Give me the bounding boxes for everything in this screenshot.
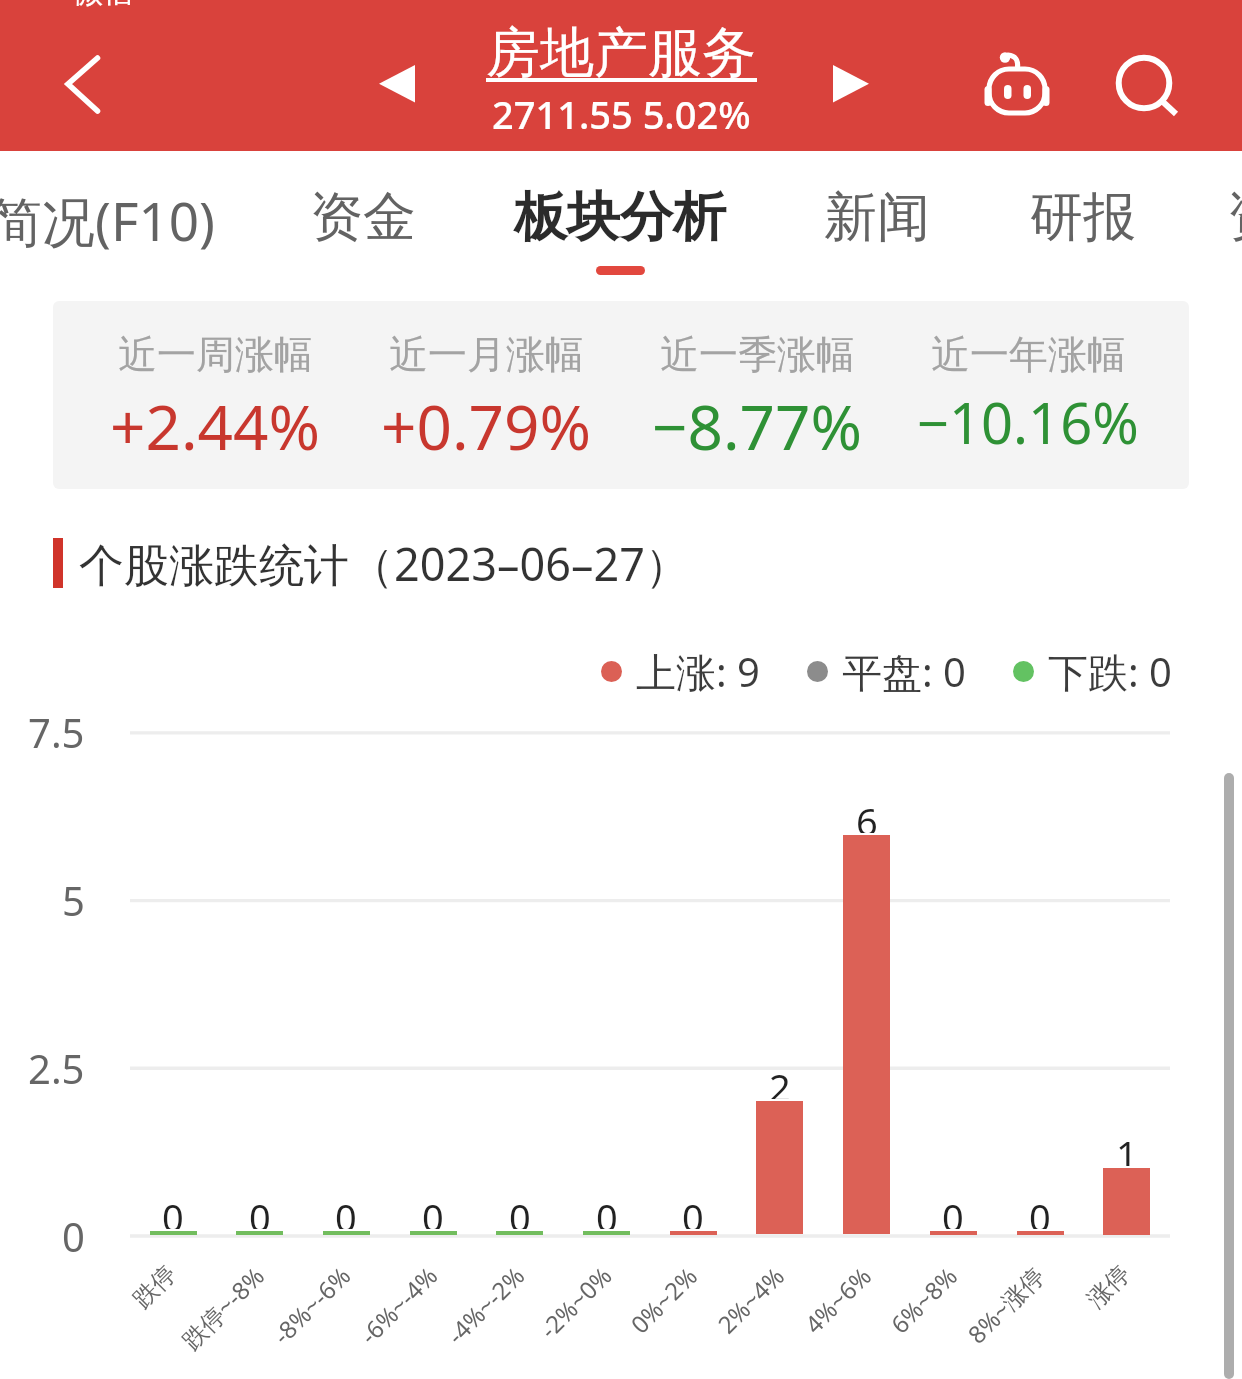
staticText: 板块分析 xyxy=(514,184,726,251)
staticText: 0 xyxy=(249,1191,271,1229)
button[interactable]: 新闻 xyxy=(757,151,997,281)
staticText: 跌停~-8% xyxy=(174,1259,271,1356)
button[interactable]: 板块分析 xyxy=(500,151,740,281)
staticText: +2.44% xyxy=(110,384,320,468)
staticText: 0 xyxy=(422,1191,444,1229)
button[interactable]: AI assistant xyxy=(961,35,1061,135)
staticText: 8%~涨停 xyxy=(960,1259,1051,1350)
staticText: -4%~-2% xyxy=(439,1259,531,1351)
staticText: 0 xyxy=(509,1191,531,1229)
staticText: −8.77% xyxy=(652,384,862,468)
staticText: 个股涨跌统计（2023–06–27） xyxy=(79,533,690,593)
staticText: 2.5 xyxy=(28,1041,85,1095)
button[interactable]: 下跌: 0 xyxy=(1013,644,1172,699)
button[interactable]: 平盘: 0 xyxy=(807,644,966,699)
button[interactable]: 资金 xyxy=(1160,151,1242,281)
button[interactable]: 近一周涨幅 xyxy=(53,301,1189,489)
staticText: 新闻 xyxy=(824,184,930,251)
button[interactable]: 研报 xyxy=(963,151,1203,281)
button[interactable]: Back xyxy=(40,36,126,132)
staticText: 0 xyxy=(682,1191,704,1229)
staticText: 4%~6% xyxy=(797,1259,878,1340)
staticText: 5 xyxy=(62,873,85,927)
button[interactable]: 简况(F10) xyxy=(0,151,222,281)
staticText: 1 xyxy=(1116,1128,1138,1166)
staticText: 2711.55 5.02% xyxy=(492,88,751,140)
staticText: 房地产服务 xyxy=(486,19,756,87)
staticText: 2 xyxy=(769,1061,791,1099)
staticText: 6 xyxy=(856,795,878,833)
staticText: -8%~-6% xyxy=(265,1259,357,1351)
staticText: 近一周涨幅 xyxy=(118,330,313,379)
button[interactable]: 资金 xyxy=(243,151,483,281)
staticText: 0%~2% xyxy=(623,1259,704,1340)
staticText: 下跌: 0 xyxy=(1048,644,1172,699)
staticText: 简况(F10) xyxy=(0,184,215,256)
staticText: 0 xyxy=(596,1191,618,1229)
staticText: 2%~4% xyxy=(710,1259,791,1340)
staticText: 涨停 xyxy=(1081,1259,1136,1314)
staticText: 近一季涨幅 xyxy=(660,330,855,379)
staticText: 0 xyxy=(1029,1191,1051,1229)
button[interactable]: Search xyxy=(1094,33,1194,133)
staticText: 研报 xyxy=(1030,184,1136,251)
button[interactable]: Next sector xyxy=(803,35,899,131)
button[interactable]: Previous sector xyxy=(349,35,445,131)
button[interactable]: 房地产服务 xyxy=(421,19,821,139)
staticText: 近一月涨幅 xyxy=(389,330,584,379)
staticText: +0.79% xyxy=(381,384,591,468)
staticText: 跌停 xyxy=(127,1259,182,1314)
button[interactable]: 上涨: 9 xyxy=(601,644,760,699)
button[interactable]: 个股涨跌统计（2023–06–27） xyxy=(53,533,690,593)
staticText: 近一年涨幅 xyxy=(931,330,1126,379)
staticText: < 微信 xyxy=(48,0,133,11)
staticText: 资金 xyxy=(310,184,416,251)
staticText: 资金 xyxy=(1227,184,1242,251)
staticText: 0 xyxy=(942,1191,964,1229)
staticText: 平盘: 0 xyxy=(842,644,966,699)
staticText: 0 xyxy=(335,1191,357,1229)
staticText: 0 xyxy=(62,1209,85,1263)
staticText: −10.16% xyxy=(917,384,1139,460)
staticText: 6%~8% xyxy=(883,1259,964,1340)
staticText: -6%~-4% xyxy=(352,1259,444,1351)
staticText: 0 xyxy=(162,1191,184,1229)
staticText: 7.5 xyxy=(28,705,85,759)
staticText: -2%~0% xyxy=(532,1259,618,1345)
staticText: 上涨: 9 xyxy=(636,644,760,699)
